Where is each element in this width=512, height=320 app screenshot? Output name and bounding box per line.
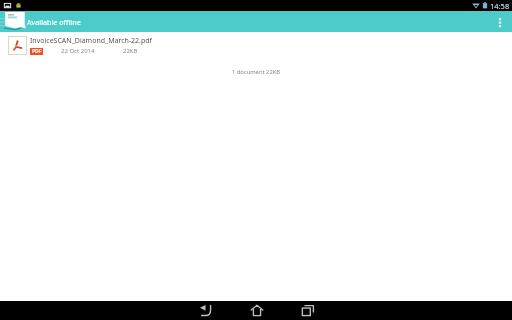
staticText: InvoiceSCAN_Diamond_March-22.pdf: [30, 36, 153, 46]
staticText: PDF: [32, 48, 42, 55]
staticText: 1 document 22KB: [0, 68, 512, 76]
button[interactable]: InvoiceSCAN_Diamond_March-22.pdf: [0, 36, 512, 56]
staticText: 22KB: [123, 47, 138, 55]
button[interactable]: Home: [231, 301, 282, 320]
button[interactable]: More options: [488, 11, 512, 32]
staticText: 14:58: [490, 1, 510, 11]
button[interactable]: Back: [180, 301, 231, 320]
button[interactable]: Open navigation drawer: [0, 11, 24, 32]
staticText: 22 Oct 2014: [61, 47, 95, 55]
staticText: Available offline: [27, 17, 81, 27]
button[interactable]: Recent apps: [282, 301, 333, 320]
